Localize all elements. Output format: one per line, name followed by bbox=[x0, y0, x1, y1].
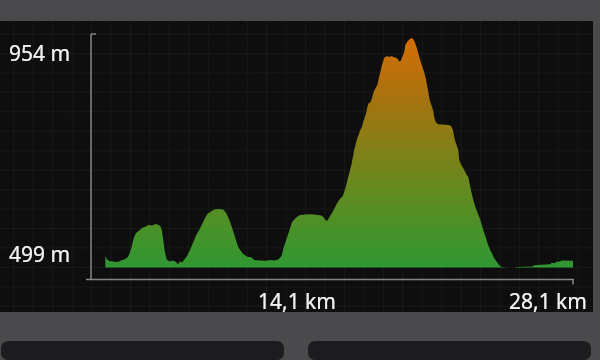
staticText: 14,1 km bbox=[258, 287, 336, 316]
staticText: 499 m bbox=[9, 240, 71, 269]
staticText: 28,1 km bbox=[509, 287, 587, 316]
staticText: 954 m bbox=[9, 39, 71, 68]
button[interactable] bbox=[1, 341, 284, 360]
button[interactable] bbox=[308, 341, 591, 360]
